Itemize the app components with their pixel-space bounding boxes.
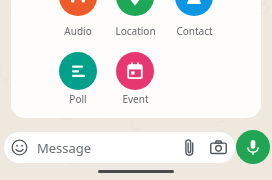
staticText: Message [37,139,92,157]
button[interactable]: Location [107,0,163,38]
button[interactable]: Emoji [4,132,235,163]
button[interactable]: Attach [180,138,199,157]
button[interactable]: Audio [50,0,106,38]
staticText: Audio [64,24,92,37]
button[interactable]: Poll [50,52,106,106]
staticText: Contact [176,24,213,37]
button[interactable]: Event [107,52,163,106]
button[interactable]: Emoji [11,139,28,156]
staticText: Location [115,24,156,37]
staticText: Event [122,92,149,105]
button[interactable]: Contact [166,0,222,38]
button[interactable]: Camera [209,138,228,157]
staticText: Poll [69,92,87,105]
button[interactable]: Record voice message [236,130,270,164]
